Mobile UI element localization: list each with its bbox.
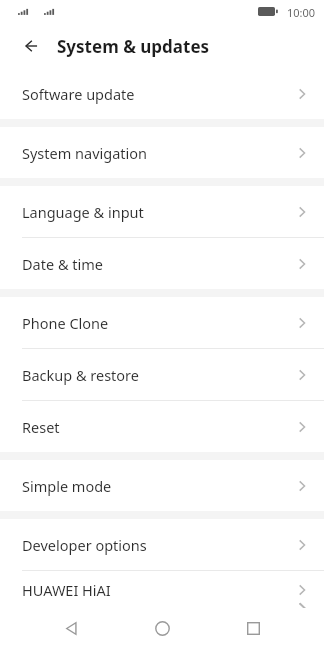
staticText: System navigation <box>22 143 294 163</box>
staticText: Reset <box>22 417 294 437</box>
button[interactable]: Date & time <box>0 238 324 289</box>
button[interactable]: Software update <box>0 68 324 119</box>
staticText: System & updates <box>57 35 210 58</box>
button[interactable]: System navigation <box>0 127 324 178</box>
staticText: HUAWEI HiAI <box>22 580 294 600</box>
button[interactable]: Phone Clone <box>0 297 324 348</box>
staticText: Date & time <box>22 254 294 274</box>
staticText: Software update <box>22 84 294 104</box>
button[interactable]: Back <box>51 608 91 648</box>
button[interactable]: Backup & restore <box>0 349 324 400</box>
button[interactable]: Developer options <box>0 519 324 570</box>
button[interactable]: Simple mode <box>0 460 324 511</box>
staticText: Backup & restore <box>22 365 294 385</box>
staticText: Phone Clone <box>22 313 294 333</box>
staticText: 10:00 <box>287 5 316 20</box>
button[interactable]: Language & input <box>0 186 324 237</box>
button[interactable]: HUAWEI HiAI <box>0 571 324 608</box>
button[interactable]: Recents <box>233 608 273 648</box>
staticText: Developer options <box>22 535 294 555</box>
button[interactable]: Reset <box>0 401 324 452</box>
button[interactable]: Back <box>14 31 44 61</box>
staticText: Language & input <box>22 202 294 222</box>
button[interactable]: Home <box>142 608 182 648</box>
staticText: Simple mode <box>22 476 294 496</box>
